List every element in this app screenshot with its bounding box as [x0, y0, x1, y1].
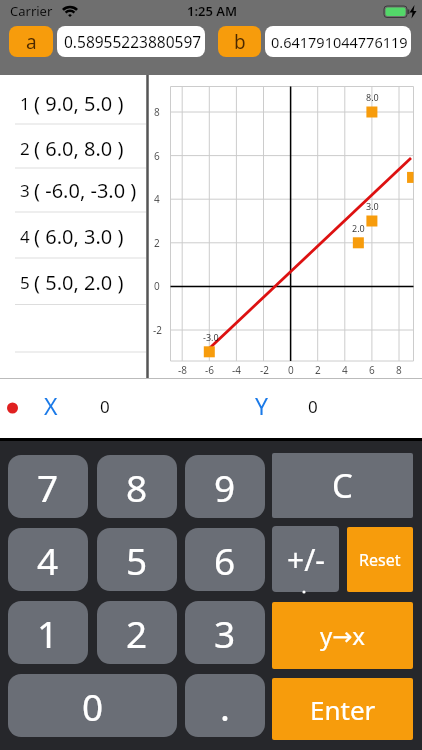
staticText: Enter	[310, 692, 376, 727]
staticText: 5	[126, 535, 148, 585]
button[interactable]: y→x	[272, 602, 413, 669]
staticText: -4	[232, 363, 241, 377]
staticText: 9	[214, 462, 236, 512]
button[interactable]: .	[185, 674, 265, 737]
button[interactable]: Reset	[347, 527, 413, 592]
staticText: 4	[37, 535, 59, 585]
staticText: -2	[153, 323, 162, 337]
staticText: C	[332, 463, 353, 508]
staticText: 4	[342, 363, 348, 377]
staticText: 6	[214, 535, 236, 585]
staticText: 0	[288, 363, 294, 377]
staticText: -2	[260, 363, 269, 377]
staticText: 2	[315, 363, 321, 377]
button[interactable]: 6	[185, 528, 265, 591]
staticText: 0.641791044776119	[271, 32, 408, 52]
button[interactable]: 3	[0, 168, 146, 212]
staticText: ( -6.0, -3.0 )	[34, 177, 137, 204]
button[interactable]: 0	[8, 674, 177, 737]
button[interactable]: 7	[8, 455, 88, 518]
staticText: 0	[100, 395, 110, 418]
staticText: 1	[37, 608, 59, 658]
button[interactable]: 2	[97, 601, 177, 664]
staticText: 1	[20, 92, 30, 115]
staticText: ( 9.0, 5.0 )	[34, 90, 124, 117]
button[interactable]: 9	[185, 455, 265, 518]
button[interactable]: +/-	[272, 526, 339, 592]
staticText: b	[234, 29, 246, 55]
staticText: 0	[154, 279, 160, 293]
staticText: 8	[126, 462, 148, 512]
staticText: -6	[205, 363, 214, 377]
button[interactable]: 1	[0, 81, 146, 125]
staticText: Y	[255, 390, 269, 421]
button[interactable]: 1	[8, 601, 88, 664]
staticText: 0	[82, 681, 104, 731]
button[interactable]: 3	[185, 601, 265, 664]
staticText: 7	[37, 462, 59, 512]
staticText: -3.0	[203, 331, 219, 343]
staticText: 3	[20, 179, 30, 202]
button[interactable]: 5	[97, 528, 177, 591]
staticText: 2	[126, 608, 148, 658]
staticText: 4	[20, 225, 30, 248]
staticText: 3.0	[366, 200, 379, 212]
button[interactable]: 4	[0, 214, 146, 258]
staticText: y→x	[320, 619, 366, 652]
staticText: -8	[178, 363, 187, 377]
button[interactable]: 0.641791044776119	[265, 26, 411, 57]
staticText: Reset	[359, 549, 401, 571]
staticText: 8	[396, 363, 402, 377]
staticText: a	[26, 29, 37, 55]
button[interactable]: Enter	[272, 678, 413, 740]
staticText: ( 5.0, 2.0 )	[34, 269, 124, 296]
button[interactable]: C	[272, 453, 413, 518]
button[interactable]: 0.58955223880597	[57, 26, 205, 57]
button[interactable]: 5	[0, 260, 146, 304]
staticText: 2	[154, 236, 160, 250]
staticText: +/-	[287, 539, 325, 580]
staticText: 3	[214, 608, 236, 658]
staticText: .	[220, 681, 230, 731]
staticText: 5	[20, 271, 30, 294]
staticText: ( 6.0, 8.0 )	[34, 135, 124, 162]
staticText: 8	[154, 105, 160, 119]
staticText: 4	[154, 192, 160, 206]
staticText: Carrier	[10, 2, 53, 20]
staticText: 8.0	[366, 91, 379, 103]
staticText: 6	[154, 149, 160, 163]
button[interactable]: b	[218, 26, 261, 57]
staticText: 2.0	[352, 222, 365, 234]
staticText: X	[44, 390, 58, 421]
button[interactable]: 2	[0, 126, 146, 170]
staticText: 0.58955223880597	[64, 31, 202, 52]
button[interactable]: 4	[8, 528, 88, 591]
staticText: 0	[308, 395, 318, 418]
staticText: 2	[20, 137, 30, 160]
button[interactable]: 8	[97, 455, 177, 518]
staticText: ( 6.0, 3.0 )	[34, 223, 124, 250]
button[interactable]: a	[9, 26, 53, 57]
staticText: 6	[369, 363, 375, 377]
staticText: 1:25 AM	[187, 2, 238, 20]
